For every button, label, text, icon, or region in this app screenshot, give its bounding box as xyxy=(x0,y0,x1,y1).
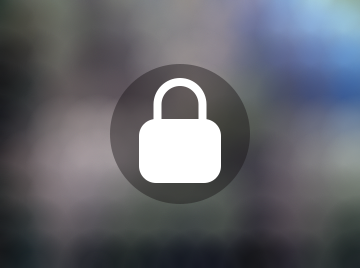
button[interactable]: Locked xyxy=(110,64,250,204)
